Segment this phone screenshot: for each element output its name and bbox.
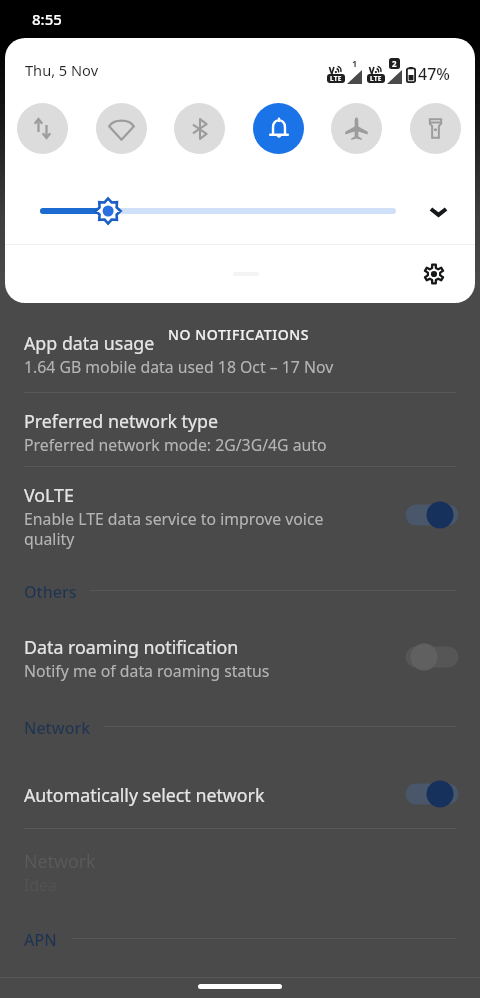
button[interactable]: On bbox=[394, 499, 450, 531]
staticText: Network bbox=[24, 717, 91, 739]
staticText: 2 bbox=[392, 58, 397, 69]
button[interactable]: Expand quick settings bbox=[416, 189, 460, 233]
button[interactable]: Airplane mode bbox=[331, 103, 382, 154]
button[interactable]: Off bbox=[394, 641, 450, 673]
staticText: LTE bbox=[370, 74, 382, 83]
staticText: LTE bbox=[330, 74, 342, 83]
staticText: 1 bbox=[352, 57, 358, 69]
button[interactable]: Mobile data bbox=[17, 103, 68, 154]
button[interactable]: Flashlight bbox=[410, 103, 461, 154]
staticText: APN bbox=[24, 929, 57, 951]
staticText: Preferred network mode: 2G/3G/4G auto bbox=[24, 434, 327, 456]
staticText: Notify me of data roaming status bbox=[24, 660, 270, 682]
staticText: Automatically select network bbox=[24, 783, 265, 807]
button[interactable]: On bbox=[394, 778, 450, 810]
staticText: 8:55 bbox=[32, 9, 62, 29]
button[interactable]: Notifications bbox=[253, 103, 304, 154]
staticText: 1.64 GB mobile data used 18 Oct – 17 Nov bbox=[24, 356, 334, 378]
button[interactable]: Wi-Fi bbox=[96, 103, 147, 154]
staticText: VoLTE bbox=[24, 483, 74, 507]
staticText: Enable LTE data service to improve voice bbox=[24, 508, 324, 530]
staticText: Thu, 5 Nov bbox=[25, 60, 99, 80]
staticText: Preferred network type bbox=[24, 409, 219, 433]
staticText: App data usage bbox=[24, 331, 155, 355]
staticText: quality bbox=[24, 528, 75, 550]
staticText: NO NOTIFICATIONS bbox=[168, 325, 310, 344]
staticText: Data roaming notification bbox=[24, 635, 239, 659]
button[interactable]: Bluetooth bbox=[174, 103, 225, 154]
staticText: Others bbox=[24, 581, 77, 603]
button[interactable]: Settings bbox=[412, 252, 456, 296]
staticText: 47% bbox=[418, 63, 450, 85]
staticText: Network bbox=[24, 849, 96, 873]
